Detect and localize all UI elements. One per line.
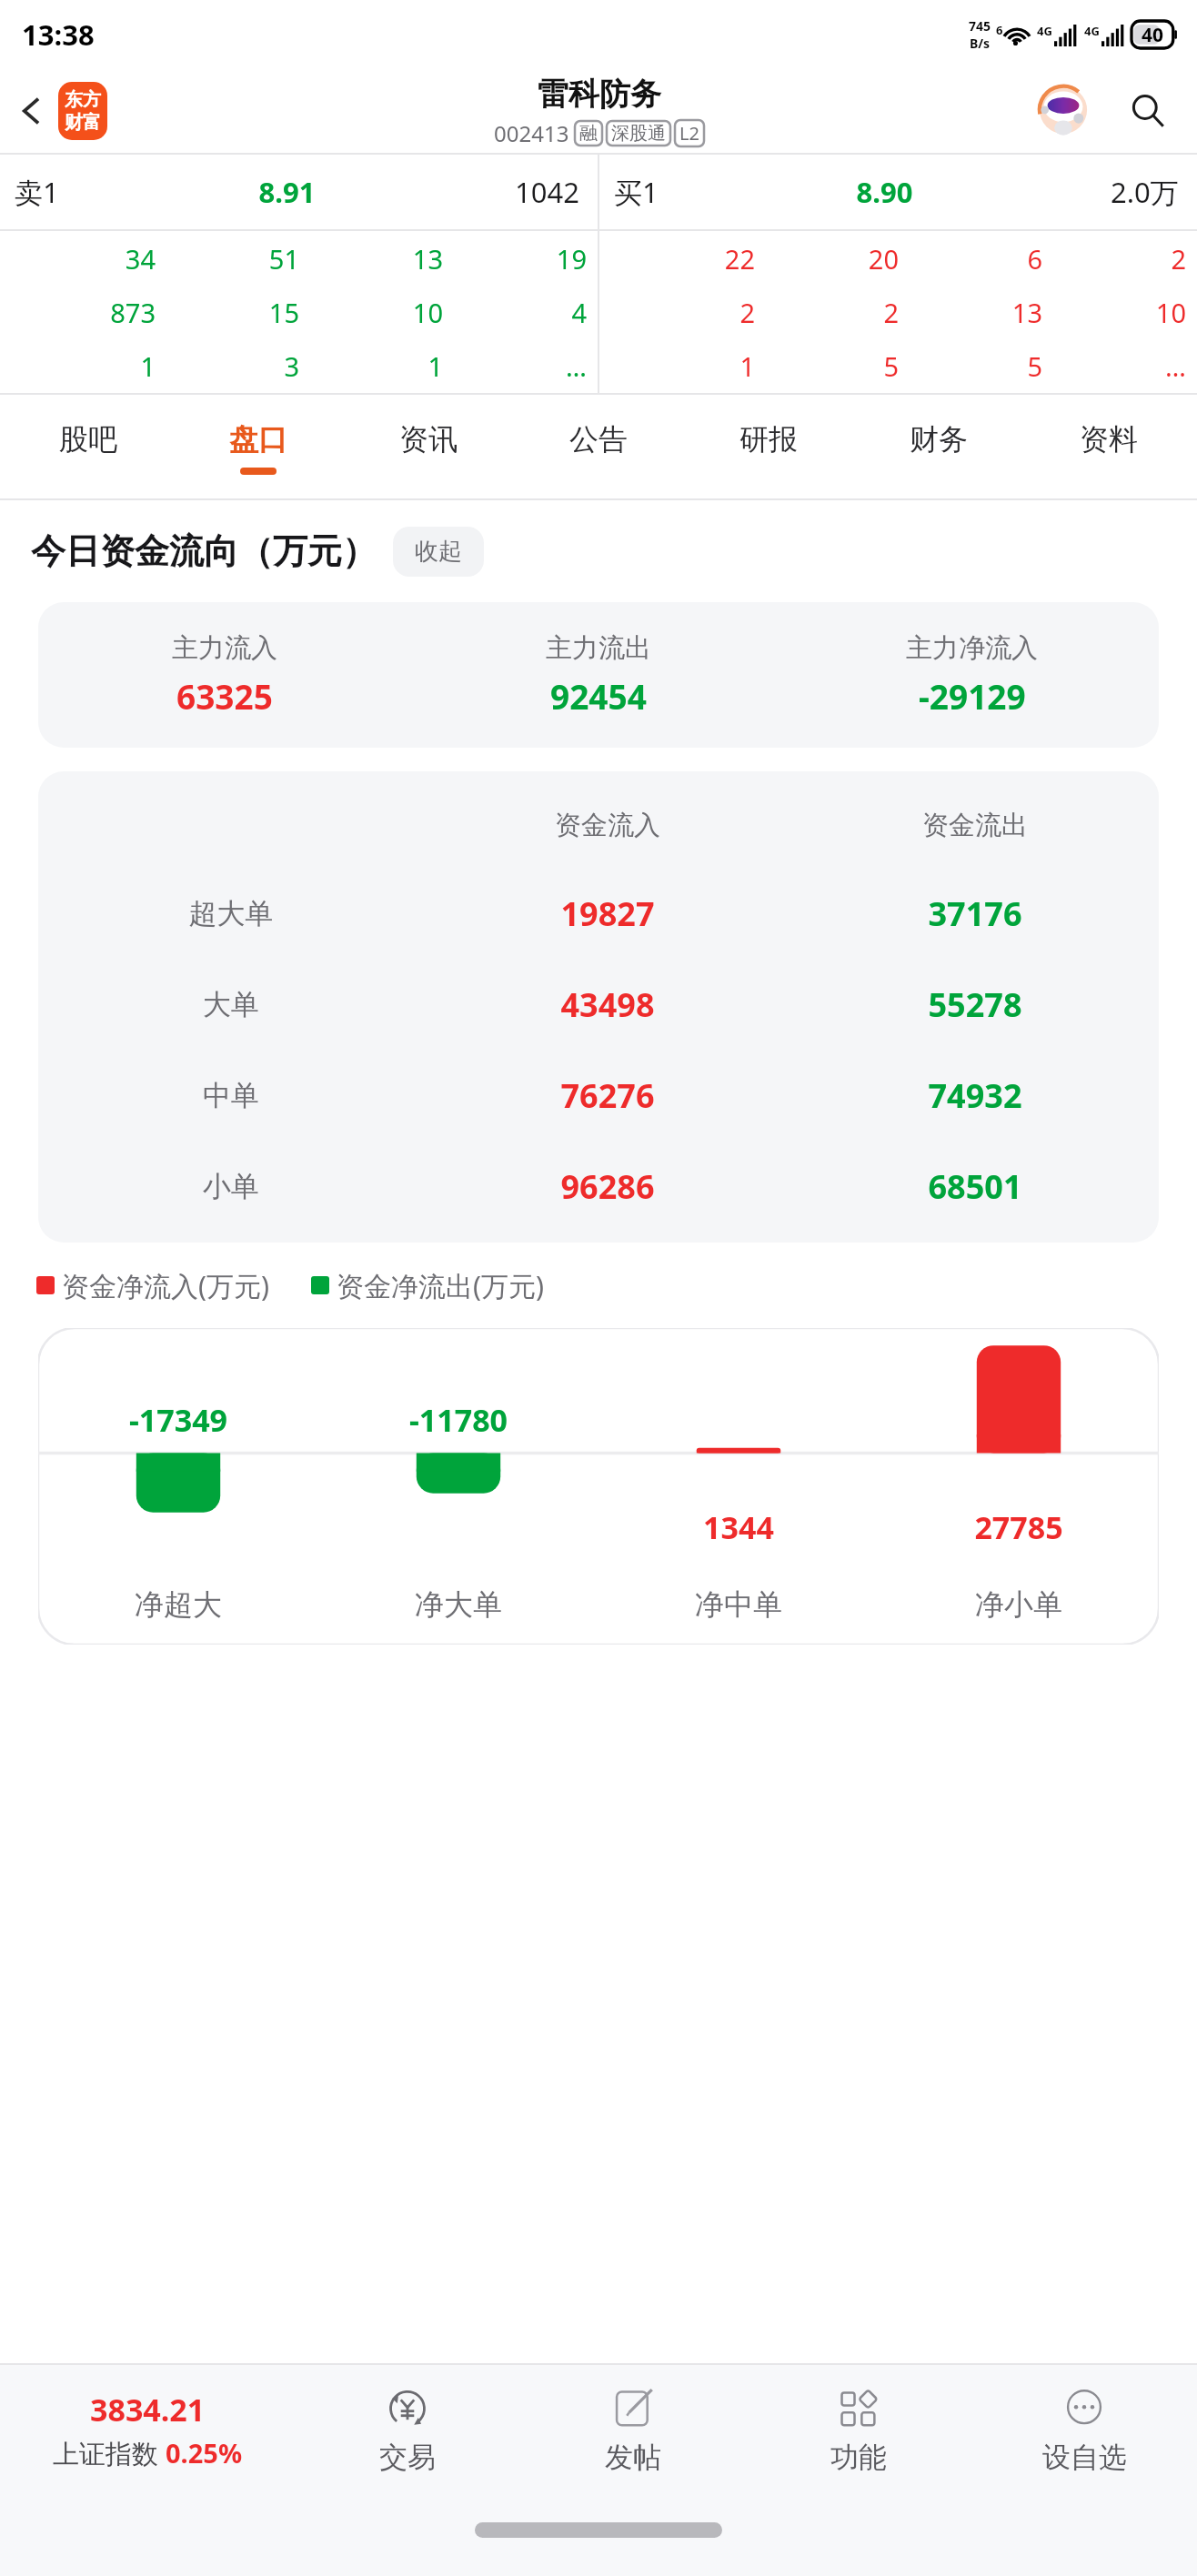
staticText: 37176 (791, 891, 1159, 936)
staticText: 3 (156, 348, 299, 384)
button[interactable]: 股吧 (4, 395, 173, 500)
button[interactable]: AI Assistant (1037, 85, 1090, 137)
staticText: -29129 (919, 673, 1026, 719)
staticText: 10 (1042, 295, 1186, 330)
staticText: 873 (11, 295, 156, 330)
button[interactable]: 资金流入 (38, 771, 1159, 1243)
staticText: 34 (11, 241, 156, 277)
staticText: 交易 (379, 2440, 436, 2475)
staticText: 买1 (614, 173, 659, 211)
button[interactable]: 卖1 (0, 155, 598, 229)
staticText: 40 (1142, 22, 1164, 48)
staticText: 43498 (424, 982, 791, 1027)
staticText: 8.90 (659, 173, 1111, 211)
staticText: 净小单 (879, 1586, 1159, 1623)
staticText: 10 (299, 295, 443, 330)
staticText: 超大单 (38, 896, 424, 931)
staticText: 公告 (569, 421, 628, 458)
button[interactable]: 34 (11, 231, 587, 393)
staticText: 融 (579, 122, 598, 145)
staticText: 19827 (424, 891, 791, 936)
staticText: 财富 (65, 111, 101, 134)
button[interactable]: 财务 (853, 395, 1023, 500)
staticText: 研报 (739, 421, 798, 458)
staticText: 设自选 (1042, 2440, 1127, 2475)
staticText: 68501 (791, 1164, 1159, 1209)
staticText: 15 (156, 295, 299, 330)
staticText: 5 (899, 348, 1042, 384)
button[interactable]: 设自选 (971, 2365, 1197, 2494)
staticText: 76276 (424, 1073, 791, 1118)
button[interactable]: 研报 (683, 395, 853, 500)
staticText: 雷科防务 (538, 75, 661, 114)
staticText: 51 (156, 241, 299, 277)
staticText: 2 (755, 295, 899, 330)
button[interactable]: 资料 (1023, 395, 1193, 500)
staticText: 5 (755, 348, 899, 384)
button[interactable]: 22 (610, 231, 1186, 393)
staticText: 资金流入 (424, 809, 791, 842)
staticText: 盘口 (229, 421, 287, 458)
staticText: 22 (610, 241, 755, 277)
button[interactable]: Back (5, 85, 58, 137)
staticText: 2.0万 (1111, 173, 1179, 211)
staticText: 主力流出 (546, 631, 651, 665)
button[interactable]: 发帖 (520, 2365, 746, 2494)
staticText: 4 (443, 295, 587, 330)
staticText: 中单 (38, 1078, 424, 1113)
staticText: … (443, 348, 587, 384)
staticText: 上证指数 (53, 2435, 166, 2471)
button[interactable]: 3834.21 (0, 2365, 295, 2494)
staticText: -17349 (38, 1399, 318, 1441)
staticText: 4G (1084, 23, 1100, 39)
button[interactable]: East Money (58, 82, 107, 140)
staticText: 财务 (910, 421, 968, 458)
staticText: 13 (299, 241, 443, 277)
staticText: 1042 (515, 173, 579, 211)
button[interactable]: 交易 (295, 2365, 520, 2494)
staticText: 资金净流出(万元) (337, 1267, 544, 1304)
staticText: 27785 (879, 1506, 1159, 1548)
button[interactable]: 买1 (599, 155, 1197, 229)
staticText: 002413 (494, 118, 569, 148)
staticText: 92454 (550, 673, 647, 719)
staticText: 股吧 (59, 421, 117, 458)
button[interactable]: 盘口 (173, 395, 343, 500)
staticText: 63325 (176, 673, 273, 719)
staticText: 20 (755, 241, 899, 277)
button[interactable]: 功能 (746, 2365, 971, 2494)
staticText: 1344 (598, 1506, 879, 1548)
staticText: 资金净流入(万元) (62, 1267, 269, 1304)
staticText: 1 (11, 348, 156, 384)
staticText: 19 (443, 241, 587, 277)
button[interactable]: 资讯 (343, 395, 513, 500)
staticText: 55278 (791, 982, 1159, 1027)
staticText: 8.91 (59, 173, 515, 211)
button[interactable]: 主力流入 (38, 602, 1159, 748)
staticText: 资讯 (399, 421, 458, 458)
staticText: 净大单 (318, 1586, 598, 1623)
staticText: 主力净流入 (906, 631, 1038, 665)
staticText: 6 (996, 22, 1003, 38)
staticText: L2 (679, 121, 699, 146)
staticText: B/s (970, 35, 991, 52)
staticText: 4G (1037, 23, 1052, 39)
staticText: 净超大 (38, 1586, 318, 1623)
staticText: 收起 (415, 537, 462, 567)
button[interactable]: 收起 (393, 527, 484, 577)
button[interactable]: 公告 (513, 395, 683, 500)
staticText: -11780 (318, 1399, 598, 1441)
staticText: 96286 (424, 1164, 791, 1209)
staticText: 资金流出 (791, 809, 1159, 842)
staticText: 发帖 (605, 2440, 661, 2475)
staticText: 2 (1042, 241, 1186, 277)
staticText: 主力流入 (172, 631, 277, 665)
staticText: … (1042, 348, 1186, 384)
staticText: 2 (610, 295, 755, 330)
staticText: 功能 (830, 2440, 887, 2475)
button[interactable]: -17349 (38, 1328, 1159, 1645)
staticText: 74932 (791, 1073, 1159, 1118)
button[interactable]: Search (1119, 82, 1177, 140)
staticText: 1 (610, 348, 755, 384)
staticText: 0.25% (166, 2435, 243, 2470)
